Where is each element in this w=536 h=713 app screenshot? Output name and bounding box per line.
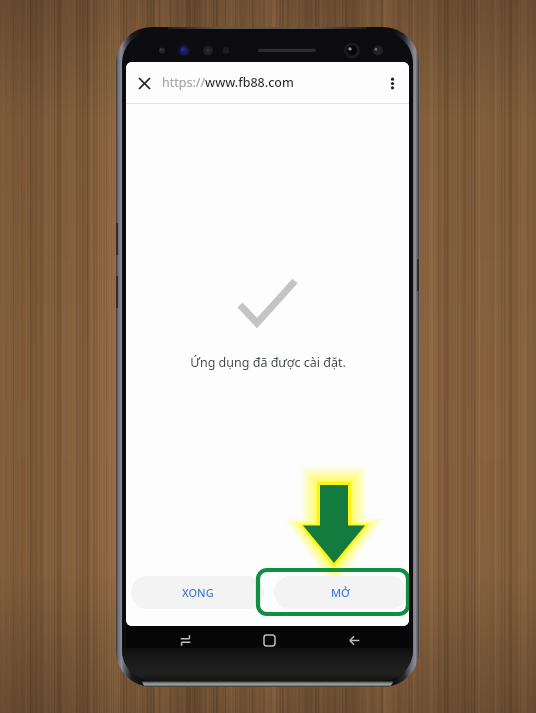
button[interactable]: Recent apps — [171, 629, 200, 651]
button[interactable]: Back — [340, 629, 369, 651]
staticText: XONG — [182, 585, 214, 600]
button[interactable]: Home — [255, 629, 284, 651]
button[interactable]: XONG — [131, 576, 264, 609]
staticText: Ứng dụng đã được cài đặt. — [190, 354, 346, 371]
staticText: MỞ — [331, 585, 350, 600]
button[interactable]: Close — [126, 65, 162, 101]
button[interactable]: More options — [375, 66, 409, 100]
staticText: https://www.fb88.com — [162, 74, 294, 91]
button[interactable]: MỞ — [274, 576, 407, 609]
